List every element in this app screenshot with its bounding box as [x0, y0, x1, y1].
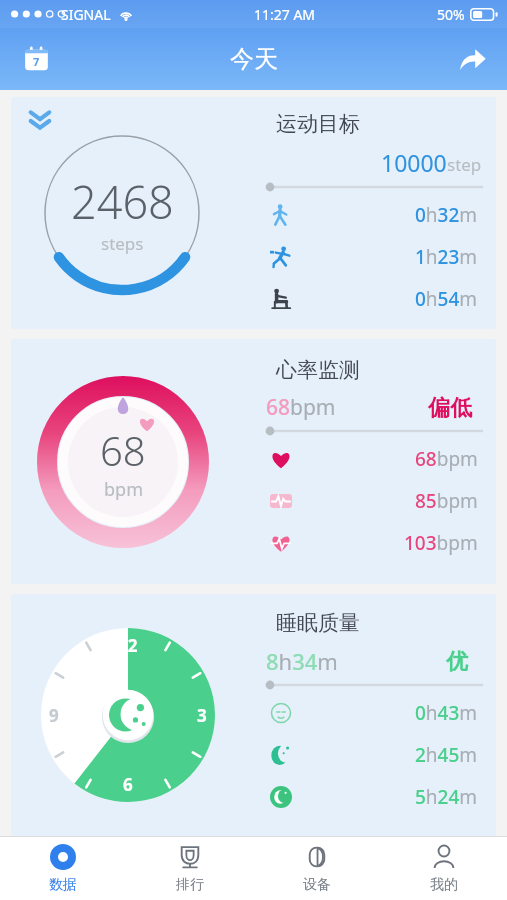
button[interactable]: 数据 [0, 837, 126, 900]
button[interactable]: 68bpm [266, 438, 482, 480]
staticText: 50% [437, 5, 465, 24]
staticText: 2468 [71, 171, 174, 232]
staticText: 9 [49, 704, 59, 727]
staticText: 85bpm [415, 488, 478, 514]
staticText: 103bpm [404, 530, 478, 556]
staticText: 0h54m [415, 286, 478, 312]
staticText: 排行 [176, 876, 204, 894]
staticText: step [447, 153, 482, 176]
staticText: 68bpm [415, 446, 478, 472]
button[interactable]: 排行 [126, 837, 253, 900]
button[interactable]: 5h24m [266, 776, 482, 818]
staticText: 睡眠质量 [276, 610, 360, 636]
staticText: 我的 [430, 876, 458, 894]
staticText: 11:27 AM [254, 5, 316, 24]
button[interactable]: 1h23m [266, 236, 482, 278]
staticText: 6 [123, 773, 133, 796]
button[interactable]: 0h54m [266, 278, 482, 320]
button[interactable]: Share [450, 37, 494, 81]
button[interactable]: 0h43m [266, 692, 482, 734]
staticText: 偏低 [428, 394, 472, 422]
staticText: 3 [197, 704, 207, 727]
button[interactable]: 0h32m [266, 194, 482, 236]
button[interactable]: 103bpm [266, 522, 482, 564]
staticText: 今天 [230, 44, 278, 74]
button[interactable]: 2468 [11, 97, 496, 329]
staticText: 12 [118, 634, 138, 657]
staticText: 设备 [303, 876, 331, 894]
staticText: bpm [104, 477, 143, 502]
staticText: 2h45m [415, 742, 478, 768]
staticText: 68bpm [266, 393, 336, 422]
button[interactable]: 85bpm [266, 480, 482, 522]
button[interactable]: 设备 [253, 837, 380, 900]
staticText: steps [101, 232, 144, 255]
staticText: 数据 [49, 876, 77, 894]
staticText: 优 [446, 648, 468, 676]
staticText: 8h34m [266, 646, 338, 676]
staticText: 运动目标 [276, 111, 360, 137]
staticText: 0h43m [415, 700, 478, 726]
staticText: 0h32m [415, 202, 478, 228]
button[interactable]: 68 [11, 339, 496, 584]
staticText: 10000 [381, 147, 447, 178]
button[interactable]: Calendar [14, 37, 58, 81]
button[interactable]: 12 [11, 594, 496, 836]
staticText: 心率监测 [276, 357, 360, 383]
staticText: 1h23m [415, 244, 478, 270]
staticText: 5h24m [415, 784, 478, 810]
staticText: 68 [100, 423, 146, 477]
button[interactable]: 我的 [380, 837, 507, 900]
staticText: SIGNAL [61, 5, 111, 24]
staticText: 7 [33, 54, 40, 69]
button[interactable]: 2h45m [266, 734, 482, 776]
